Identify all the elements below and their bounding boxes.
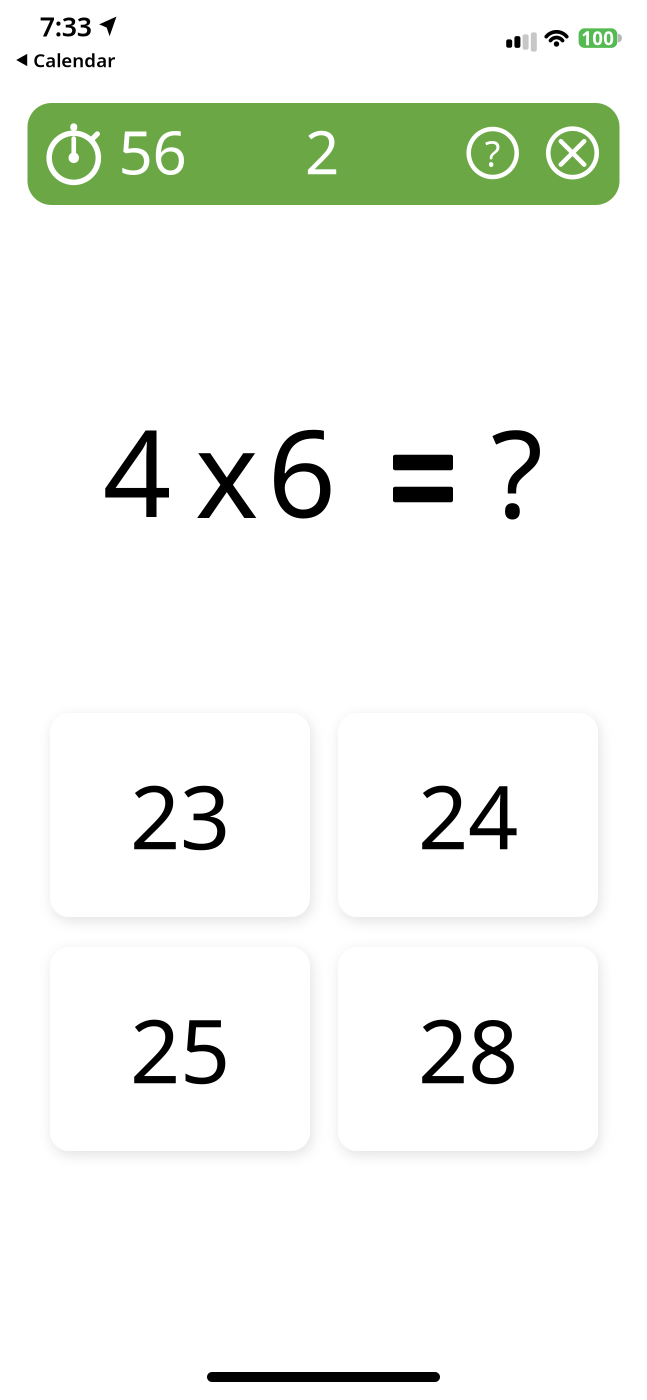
staticText: 4 [103, 391, 172, 551]
button[interactable]: 28 [338, 947, 598, 1151]
button[interactable]: 24 [338, 713, 598, 917]
staticText: 7:33 [40, 8, 92, 44]
button[interactable]: Help [465, 125, 521, 181]
staticText: 25 [130, 991, 230, 1107]
staticText: 100 [581, 26, 614, 50]
button[interactable]: Back to Calendar [16, 48, 115, 72]
staticText: Calendar [33, 48, 115, 72]
staticText: 23 [130, 757, 230, 873]
staticText: x [195, 392, 258, 551]
staticText: 56 [118, 111, 186, 191]
button[interactable]: 25 [50, 947, 310, 1151]
staticText: 28 [418, 991, 518, 1107]
staticText: ? [485, 129, 501, 177]
button[interactable]: Close [544, 125, 600, 181]
staticText: 6 [267, 391, 336, 551]
button[interactable]: 23 [50, 713, 310, 917]
staticText: ? [491, 391, 543, 551]
staticText: 24 [418, 757, 518, 873]
staticText: 2 [305, 111, 339, 191]
